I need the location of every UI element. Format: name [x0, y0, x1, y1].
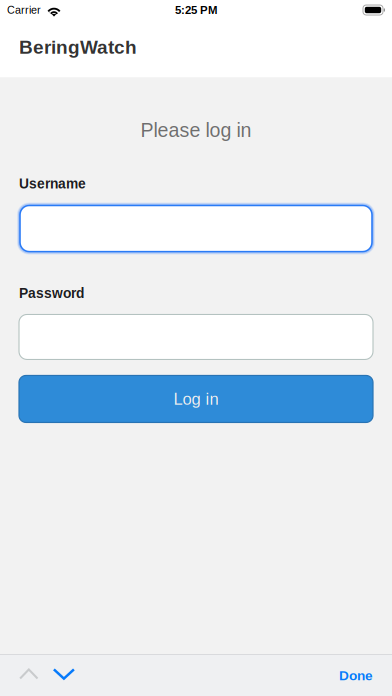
staticText: Done: [339, 668, 373, 683]
staticText: Carrier: [7, 4, 41, 16]
button[interactable]: Done: [333, 662, 379, 689]
staticText: Password: [19, 285, 84, 301]
button[interactable]: Previous field: [15, 664, 43, 687]
staticText: Log in: [173, 390, 218, 408]
button[interactable]: Next field: [49, 664, 79, 687]
staticText: BeringWatch: [19, 36, 137, 58]
staticText: Username: [19, 176, 86, 191]
button[interactable]: Log in: [19, 375, 373, 422]
staticText: 5:25 PM: [175, 4, 217, 16]
staticText: Please log in: [140, 119, 251, 141]
